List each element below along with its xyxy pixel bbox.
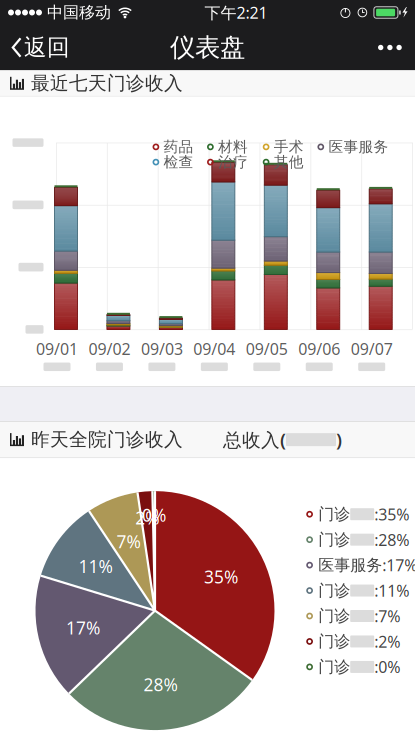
staticText: :11%: [374, 580, 409, 601]
staticText: :2%: [374, 631, 400, 652]
staticText: 治疗: [218, 153, 248, 171]
staticText: 门诊: [318, 606, 350, 626]
staticText: 28%: [143, 673, 177, 696]
button[interactable]: 返回: [0, 25, 82, 70]
staticText: 药品: [163, 138, 193, 156]
staticText: :7%: [374, 605, 400, 627]
staticText: :35%: [374, 504, 409, 525]
staticText: 0%: [142, 503, 166, 526]
staticText: 门诊: [318, 632, 350, 651]
staticText: 2%: [135, 506, 159, 529]
staticText: :0%: [374, 656, 400, 677]
staticText: 17%: [66, 616, 100, 639]
staticText: 医事服务: [328, 138, 388, 156]
staticText: 医事服务: [318, 555, 382, 575]
staticText: 材料: [218, 138, 248, 156]
staticText: 手术: [274, 138, 304, 156]
staticText: 09/02: [88, 338, 130, 359]
staticText: 35%: [204, 565, 238, 588]
button[interactable]: 更多: [365, 25, 415, 70]
staticText: ): [336, 427, 342, 452]
staticText: 中国移动: [47, 3, 111, 22]
staticText: :28%: [374, 529, 409, 550]
staticText: 其他: [274, 153, 304, 171]
staticText: 11%: [79, 555, 113, 578]
staticText: 09/07: [351, 338, 393, 359]
staticText: 09/04: [193, 338, 235, 359]
staticText: 门诊: [318, 581, 350, 600]
staticText: 7%: [116, 530, 140, 553]
staticText: 门诊: [318, 504, 350, 524]
staticText: 总收入(: [223, 427, 286, 452]
staticText: :17%: [382, 554, 415, 576]
staticText: 09/05: [246, 338, 288, 359]
staticText: 返回: [24, 34, 70, 61]
staticText: 检查: [163, 153, 193, 171]
staticText: 09/03: [141, 338, 183, 359]
staticText: 门诊: [318, 530, 350, 549]
staticText: 最近七天门诊收入: [31, 72, 183, 95]
staticText: 下午2:21: [204, 2, 267, 23]
staticText: 09/06: [298, 338, 340, 359]
staticText: 门诊: [318, 657, 350, 677]
staticText: 09/01: [36, 338, 78, 359]
staticText: 仪表盘: [170, 32, 245, 63]
staticText: 昨天全院门诊收入: [31, 428, 183, 451]
